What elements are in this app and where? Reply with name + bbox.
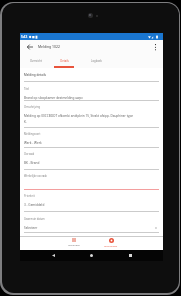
staticText: 3 - Gemiddeld xyxy=(24,203,45,207)
staticText: Werkelijke oorzaak xyxy=(24,174,47,178)
staticText: Melding op 00CCBOOT ofkombi andtplein 15… xyxy=(24,114,134,118)
button[interactable]: Back xyxy=(23,40,36,53)
button[interactable]: Back xyxy=(48,250,59,261)
staticText: Omschrijving xyxy=(24,105,41,109)
button[interactable]: Logboek xyxy=(84,53,109,68)
staticText: Selecteer xyxy=(24,226,38,230)
button[interactable]: Meldingen xyxy=(55,236,92,250)
staticText: Gewenste datum xyxy=(24,217,45,221)
staticText: Meldingen xyxy=(68,243,80,246)
staticText: Overzicht xyxy=(30,59,42,63)
staticText: Instellingen xyxy=(104,244,118,247)
staticText: Melding 1022 xyxy=(38,44,60,49)
button[interactable]: Instellingen xyxy=(92,236,129,250)
staticText: Logboek xyxy=(91,59,102,63)
staticText: Oorzaak xyxy=(24,152,35,156)
staticText: K. xyxy=(24,120,27,124)
button[interactable]: Overzicht xyxy=(22,53,49,68)
button[interactable]: More options xyxy=(149,40,162,53)
staticText: Werk - Werk xyxy=(24,141,42,145)
staticText: Melding details xyxy=(24,73,47,77)
staticText: Details xyxy=(60,59,69,63)
staticText: Meldingsoort xyxy=(24,132,41,136)
staticText: BK - Brand xyxy=(24,161,40,165)
staticText: Brand op sloopkamer destmelding uwpc xyxy=(24,96,83,100)
button[interactable]: Details xyxy=(53,53,75,68)
button[interactable]: Home xyxy=(86,250,97,261)
staticText: Titel xyxy=(24,87,30,91)
button[interactable]: Recents xyxy=(125,250,136,261)
staticText: Prioriteit xyxy=(24,194,35,198)
staticText: 5:43 xyxy=(21,35,28,39)
